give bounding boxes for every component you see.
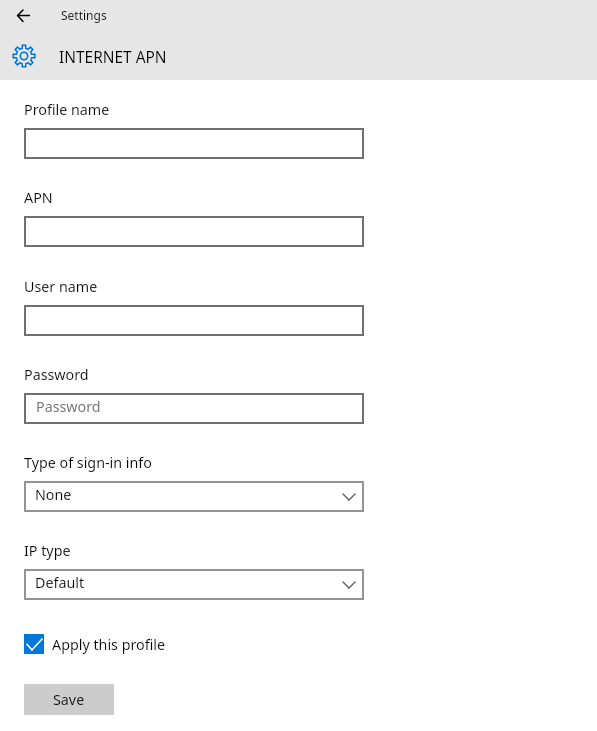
staticText: Password (24, 365, 89, 384)
staticText: None (35, 485, 72, 504)
staticText: User name (24, 277, 98, 296)
staticText: Type of sign-in info (24, 453, 152, 472)
button[interactable]: Settings (61, 7, 107, 23)
button[interactable]: Apply this profile (24, 632, 166, 656)
button[interactable]: Save (24, 684, 114, 715)
staticText: Settings (61, 7, 107, 23)
button[interactable]: Back (4, 2, 31, 29)
staticText: Password (36, 397, 101, 416)
staticText: IP type (24, 541, 71, 560)
staticText: INTERNET APN (59, 46, 167, 67)
button[interactable]: Default (24, 569, 364, 600)
button[interactable]: Password (24, 393, 364, 424)
staticText: Apply this profile (52, 635, 166, 654)
button[interactable] (24, 216, 364, 247)
staticText: Default (35, 573, 85, 592)
button[interactable] (24, 305, 364, 336)
staticText: Profile name (24, 100, 110, 119)
staticText: APN (24, 188, 53, 207)
staticText: Save (53, 690, 85, 709)
button[interactable]: None (24, 481, 364, 512)
button[interactable] (24, 128, 364, 159)
